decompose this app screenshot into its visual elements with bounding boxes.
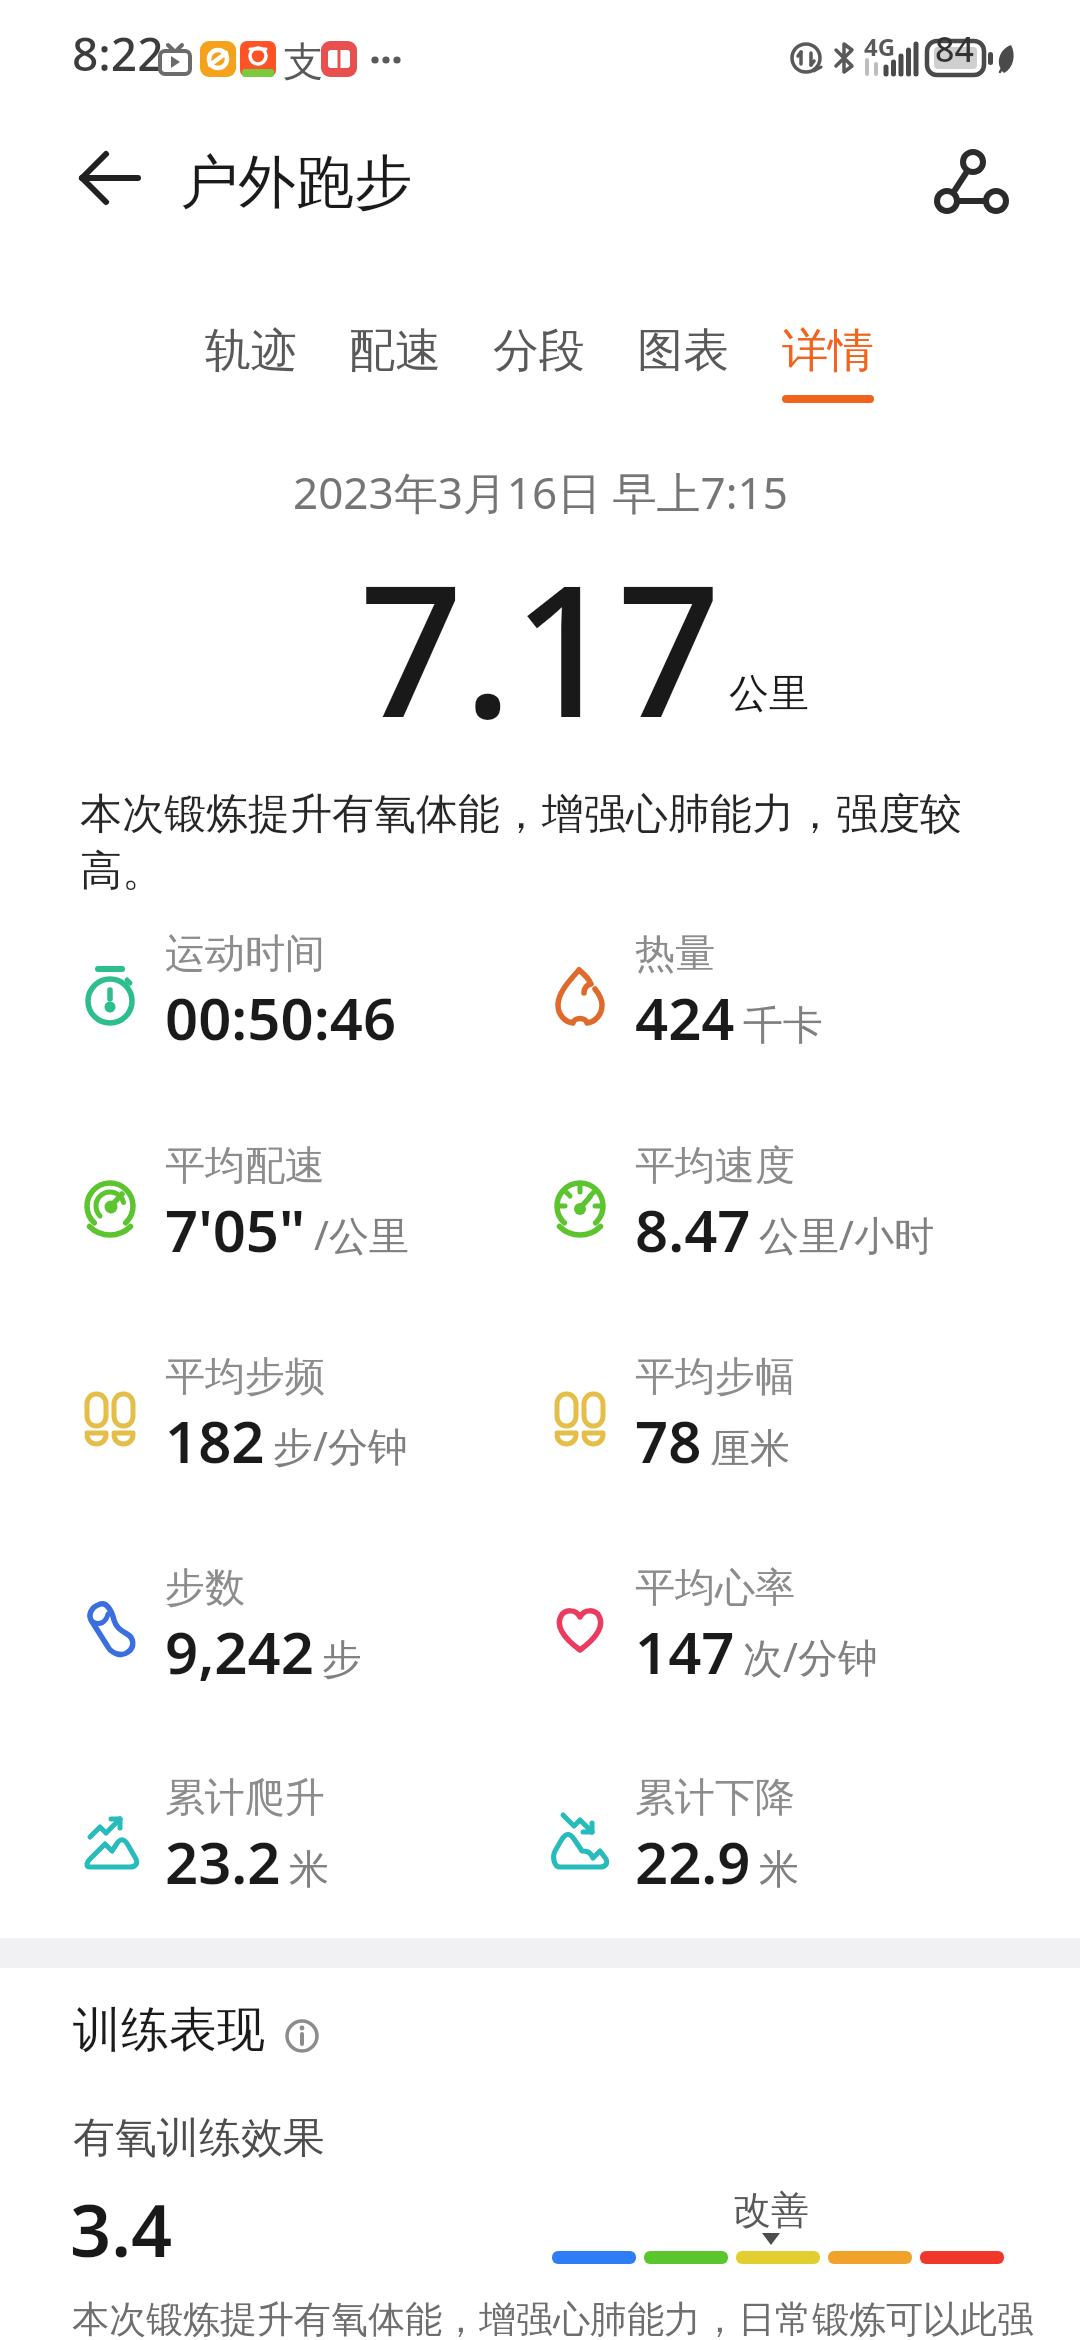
staticText: 改善	[733, 2186, 809, 2234]
button[interactable]: 累计下降	[635, 1772, 799, 1901]
staticText: 22.9	[635, 1822, 751, 1901]
button[interactable]: 平均步频	[165, 1351, 408, 1480]
button[interactable]: 平均步幅	[635, 1351, 795, 1480]
staticText: 182	[165, 1401, 265, 1480]
staticText: 147	[635, 1612, 735, 1691]
staticText: 8:22	[72, 22, 164, 85]
staticText: 米	[289, 1844, 329, 1894]
button[interactable]: 配速	[349, 322, 441, 380]
button[interactable]: 步数	[165, 1562, 362, 1691]
staticText: 平均速度	[635, 1140, 795, 1190]
staticText: 图表	[637, 322, 729, 380]
staticText: 7.17	[359, 522, 721, 770]
staticText: 4G	[864, 30, 896, 63]
staticText: 公里/小时	[759, 1207, 934, 1262]
staticText: 步/分钟	[273, 1418, 408, 1473]
staticText: 8.47	[635, 1190, 751, 1269]
button[interactable]: 平均心率	[635, 1562, 878, 1691]
staticText: 00:50:46	[165, 978, 397, 1057]
staticText: 424	[635, 978, 735, 1057]
staticText: 平均步频	[165, 1351, 325, 1401]
staticText: 9,242	[165, 1612, 314, 1691]
staticText: 次/分钟	[743, 1629, 878, 1684]
staticText: 热量	[635, 928, 715, 978]
staticText: 84	[935, 26, 974, 72]
staticText: 户外跑步	[180, 146, 412, 219]
staticText: 公里	[729, 668, 809, 718]
button[interactable]	[276, 2010, 328, 2062]
button[interactable]: 详情	[782, 322, 874, 380]
staticText: 平均心率	[635, 1562, 795, 1612]
button[interactable]	[920, 140, 1020, 230]
staticText: 累计下降	[635, 1772, 795, 1822]
button[interactable]: 热量	[635, 928, 823, 1057]
staticText: 本次锻炼提升有氧体能，增强心肺能力，强度较	[80, 788, 962, 841]
staticText: 支	[283, 36, 323, 86]
staticText: 训练表现	[73, 2000, 265, 2060]
staticText: 本次锻炼提升有氧体能，增强心肺能力，日常锻炼可以此强	[72, 2296, 1034, 2340]
staticText: 分段	[493, 322, 585, 380]
staticText: 有氧训练效果	[73, 2112, 325, 2165]
staticText: 23.2	[165, 1822, 281, 1901]
staticText: 千卡	[743, 1000, 823, 1050]
staticText: 步	[322, 1634, 362, 1684]
staticText: 详情	[782, 322, 874, 380]
staticText: 运动时间	[165, 928, 325, 978]
button[interactable]: 图表	[637, 322, 729, 380]
staticText: 累计爬升	[165, 1772, 325, 1822]
button[interactable]: 平均速度	[635, 1140, 934, 1269]
staticText: 高。	[80, 845, 164, 898]
staticText: 步数	[165, 1562, 245, 1612]
button[interactable]	[60, 140, 160, 230]
staticText: 米	[759, 1844, 799, 1894]
staticText: 7'05"	[165, 1190, 306, 1269]
staticText: 78	[635, 1401, 702, 1480]
staticText: 3.4	[70, 2180, 173, 2278]
staticText: 2023年3月16日 早上7:15	[293, 462, 788, 522]
staticText: 平均步幅	[635, 1351, 795, 1401]
button[interactable]: 轨迹	[205, 322, 297, 380]
staticText: 轨迹	[205, 322, 297, 380]
button[interactable]: 累计爬升	[165, 1772, 329, 1901]
staticText: 厘米	[710, 1423, 790, 1473]
staticText: /公里	[314, 1207, 409, 1262]
button[interactable]: 运动时间	[165, 928, 397, 1057]
button[interactable]: 分段	[493, 322, 585, 380]
staticText: 平均配速	[165, 1140, 325, 1190]
staticText: 配速	[349, 322, 441, 380]
button[interactable]: 平均配速	[165, 1140, 409, 1269]
